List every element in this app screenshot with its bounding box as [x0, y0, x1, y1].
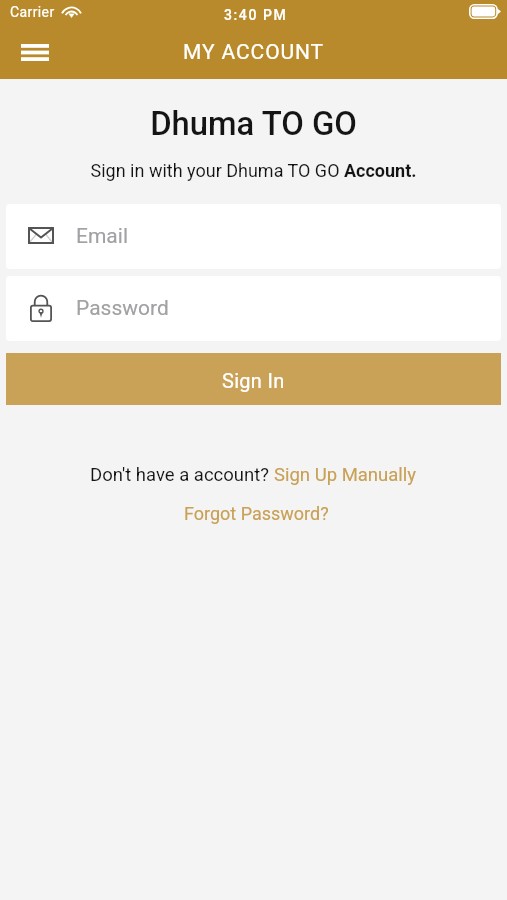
staticText: Forgot Password?: [184, 503, 329, 524]
button[interactable]: Sign Up Manually: [274, 464, 417, 486]
staticText: Don't have a account?: [90, 464, 274, 486]
staticText: 3:40 PM: [224, 7, 288, 23]
button[interactable]: Email: [6, 204, 501, 269]
staticText: Email: [76, 224, 128, 249]
staticText: MY ACCOUNT: [0, 40, 507, 65]
button[interactable]: Password: [6, 276, 501, 341]
button[interactable]: Forgot Password?: [184, 503, 329, 524]
staticText: Carrier: [10, 4, 55, 20]
staticText: Dhuma TO GO: [0, 105, 507, 143]
staticText: Password: [76, 296, 169, 321]
staticText: Sign In: [222, 369, 285, 392]
button[interactable]: Open navigation menu: [9, 30, 61, 74]
staticText: Sign Up Manually: [274, 464, 417, 486]
button[interactable]: Sign In: [6, 353, 501, 405]
staticText: Sign in with your Dhuma TO GO Account.: [0, 160, 507, 181]
